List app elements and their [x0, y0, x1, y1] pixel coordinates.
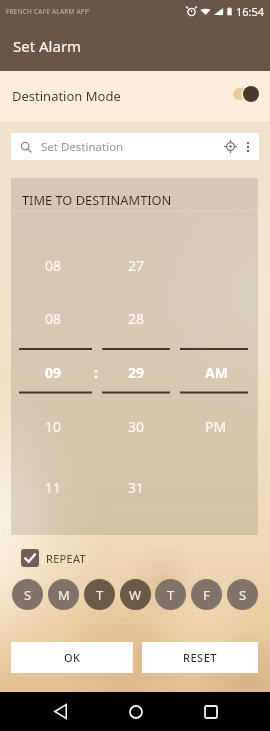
button[interactable]: S — [227, 579, 258, 610]
staticText: 30 — [128, 417, 145, 436]
staticText: FRENCH CAFE ALARM APP — [6, 7, 90, 16]
staticText: 28 — [128, 309, 145, 328]
button[interactable]: T — [84, 579, 115, 610]
button[interactable]: M — [48, 579, 79, 610]
staticText: TIME TO DESTINAMTION — [22, 191, 172, 208]
staticText: 10 — [45, 417, 62, 436]
button[interactable]: W — [120, 579, 151, 610]
other: More options — [246, 140, 250, 154]
staticText: S — [239, 586, 247, 604]
button[interactable]: REPEAT — [21, 549, 86, 567]
staticText: 11 — [45, 478, 62, 497]
staticText: 29 — [128, 363, 145, 382]
staticText: AM — [205, 363, 228, 382]
button[interactable]: Home — [119, 692, 152, 731]
staticText: T — [167, 586, 175, 604]
staticText: : — [94, 363, 98, 382]
button[interactable]: Recent apps — [194, 692, 227, 731]
button[interactable]: RESET — [142, 642, 258, 673]
button[interactable]: Destination Mode — [0, 71, 270, 121]
other: Destination mode toggle — [231, 82, 263, 106]
staticText: S — [24, 586, 32, 604]
staticText: W — [129, 586, 142, 604]
staticText: 08 — [45, 309, 62, 328]
other: My location — [224, 140, 237, 153]
staticText: T — [96, 586, 104, 604]
staticText: F — [203, 586, 210, 604]
button[interactable]: F — [191, 579, 222, 610]
staticText: Destination Mode — [12, 87, 121, 105]
staticText: 27 — [128, 256, 145, 275]
staticText: 08 — [45, 256, 62, 275]
staticText: RESET — [183, 650, 217, 665]
staticText: M — [58, 586, 70, 604]
staticText: 31 — [128, 478, 145, 497]
staticText: PM — [205, 417, 227, 436]
staticText: REPEAT — [46, 551, 86, 566]
button[interactable]: Back — [44, 692, 77, 731]
staticText: Set Alarm — [13, 36, 82, 56]
button[interactable]: Set Destination — [11, 133, 259, 160]
button[interactable]: OK — [11, 642, 133, 673]
button[interactable]: S — [12, 579, 43, 610]
staticText: Set Destination — [41, 139, 124, 155]
staticText: OK — [64, 650, 81, 665]
button[interactable]: T — [155, 579, 186, 610]
staticText: 09 — [45, 363, 62, 382]
staticText: 16:54 — [236, 4, 265, 19]
